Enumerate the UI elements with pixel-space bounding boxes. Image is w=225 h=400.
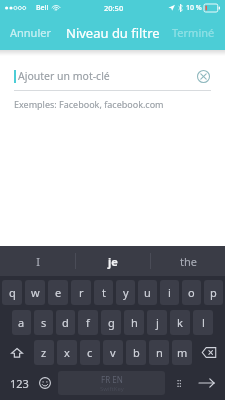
- button[interactable]: je: [76, 246, 150, 276]
- button[interactable]: k: [170, 310, 190, 335]
- staticText: w: [31, 285, 40, 300]
- staticText: u: [144, 285, 151, 300]
- staticText: Annuler: [10, 25, 52, 40]
- staticText: the: [180, 254, 197, 269]
- staticText: ⁝⁝: [177, 378, 182, 389]
- button[interactable]: z: [34, 340, 54, 365]
- button[interactable]: x: [57, 340, 77, 365]
- button[interactable]: h: [124, 310, 144, 335]
- button[interactable]: y: [116, 280, 135, 305]
- button[interactable]: c: [80, 340, 100, 365]
- staticText: e: [55, 285, 62, 300]
- staticText: b: [133, 345, 140, 360]
- staticText: v: [110, 345, 116, 360]
- button[interactable]: n: [149, 340, 169, 365]
- button[interactable]: f: [78, 310, 98, 335]
- staticText: l: [202, 315, 205, 330]
- button[interactable]: a: [12, 310, 31, 335]
- staticText: r: [79, 285, 84, 300]
- button[interactable]: Entrée: [191, 370, 221, 396]
- button[interactable]: Paramètres de saisie: [167, 370, 191, 396]
- staticText: d: [62, 315, 69, 330]
- button[interactable]: 123: [4, 370, 34, 396]
- staticText: o: [188, 285, 195, 300]
- staticText: Ajouter un mot-clé: [18, 69, 110, 83]
- staticText: SwiftKey: [100, 385, 124, 393]
- button[interactable]: I: [0, 246, 75, 276]
- staticText: a: [18, 315, 25, 330]
- button[interactable]: w: [25, 280, 45, 305]
- button[interactable]: Effacer: [195, 68, 211, 84]
- staticText: f: [86, 315, 90, 330]
- staticText: 123: [10, 376, 29, 391]
- staticText: I: [36, 254, 40, 269]
- staticText: t: [102, 285, 106, 300]
- button[interactable]: Supprimer: [195, 340, 223, 365]
- button[interactable]: j: [147, 310, 167, 335]
- staticText: je: [108, 254, 118, 269]
- staticText: k: [177, 315, 183, 330]
- staticText: n: [156, 345, 163, 360]
- staticText: y: [123, 285, 129, 300]
- button[interactable]: FR EN: [58, 371, 165, 395]
- button[interactable]: i: [160, 280, 179, 305]
- staticText: h: [131, 315, 138, 330]
- button[interactable]: p: [204, 280, 223, 305]
- staticText: x: [64, 345, 70, 360]
- button[interactable]: d: [56, 310, 75, 335]
- staticText: Exemples: Facebook, facebook.com: [14, 98, 164, 110]
- button[interactable]: u: [138, 280, 157, 305]
- staticText: FR EN: [101, 374, 123, 385]
- button[interactable]: e: [48, 280, 68, 305]
- button[interactable]: v: [103, 340, 123, 365]
- button[interactable]: m: [172, 340, 192, 365]
- button[interactable]: the: [151, 246, 225, 276]
- staticText: g: [108, 315, 115, 330]
- staticText: j: [156, 315, 159, 330]
- button[interactable]: g: [101, 310, 121, 335]
- staticText: Niveau du filtre: [66, 24, 160, 42]
- staticText: 10 %: [186, 3, 202, 13]
- staticText: m: [177, 345, 188, 360]
- staticText: i: [168, 285, 171, 300]
- button[interactable]: q: [2, 280, 22, 305]
- button[interactable]: Annuler: [0, 18, 62, 47]
- staticText: q: [9, 285, 16, 300]
- button[interactable]: r: [71, 280, 91, 305]
- staticText: p: [210, 285, 217, 300]
- staticText: Bell: [36, 3, 49, 13]
- button[interactable]: Terminé: [162, 18, 225, 47]
- button[interactable]: Emoji: [34, 370, 56, 396]
- button[interactable]: t: [94, 280, 113, 305]
- button[interactable]: s: [34, 310, 53, 335]
- staticText: 20:50: [104, 3, 124, 13]
- button[interactable]: o: [182, 280, 201, 305]
- button[interactable]: Majuscule: [2, 340, 31, 365]
- staticText: Terminé: [172, 25, 215, 40]
- staticText: c: [87, 345, 93, 360]
- button[interactable]: b: [126, 340, 146, 365]
- staticText: z: [41, 345, 47, 360]
- button[interactable]: l: [193, 310, 213, 335]
- staticText: s: [41, 315, 47, 330]
